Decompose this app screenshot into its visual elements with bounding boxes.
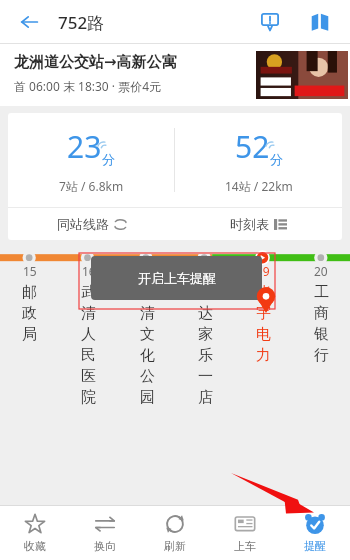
button[interactable]: 换向 [70, 506, 140, 560]
staticText: 23 [67, 126, 102, 167]
staticText: 银 [314, 325, 329, 344]
staticText: 公 [140, 367, 155, 386]
staticText: 局 [22, 325, 37, 344]
staticText: 换向 [94, 539, 116, 553]
staticText: 18 [198, 263, 212, 279]
staticText: 文 [140, 325, 155, 344]
staticText: 店 [198, 388, 213, 407]
staticText: 分 [102, 151, 115, 167]
staticText: 行 [314, 346, 329, 365]
button[interactable]: 19 [234, 263, 292, 367]
button[interactable]: 23 [8, 113, 174, 207]
staticText: 上车 [234, 539, 256, 553]
button[interactable]: 上车 [210, 506, 280, 560]
button[interactable]: Report [254, 6, 286, 38]
staticText: 电 [256, 325, 271, 344]
staticText: 家 [198, 325, 213, 344]
staticText: 19 [256, 263, 270, 279]
button[interactable]: 刷新 [140, 506, 210, 560]
button[interactable]: 17 [118, 263, 176, 409]
staticText: 52 [235, 126, 270, 167]
staticText: 15 [23, 263, 37, 279]
staticText: 宇 [256, 304, 271, 323]
button[interactable]: Map [304, 6, 336, 38]
staticText: 武 [140, 283, 155, 302]
button[interactable]: Back [14, 7, 44, 37]
staticText: 人 [81, 325, 96, 344]
staticText: 收藏 [24, 539, 46, 553]
button[interactable]: 15 [0, 263, 59, 346]
staticText: 化 [140, 346, 155, 365]
staticText: 达 [198, 304, 213, 323]
button[interactable]: 时刻表 [175, 208, 342, 240]
staticText: 工 [314, 283, 329, 302]
staticText: 17 [140, 263, 154, 279]
button[interactable]: Advertisement [256, 51, 348, 99]
staticText: 邮 [22, 283, 37, 302]
staticText: 首 06:00 末 18:30 · 票价4元 [14, 78, 162, 94]
staticText: 医 [81, 367, 96, 386]
staticText: 政 [22, 304, 37, 323]
staticText: 乐 [198, 346, 213, 365]
staticText: 开启上车提醒 [138, 270, 216, 286]
staticText: 一 [198, 367, 213, 386]
button[interactable]: 18 [176, 263, 234, 409]
staticText: 商 [314, 304, 329, 323]
button[interactable]: 52 [175, 113, 342, 207]
button[interactable]: 同站线路 [8, 208, 175, 240]
staticText: 园 [140, 388, 155, 407]
button[interactable]: 收藏 [0, 506, 70, 560]
button[interactable]: 16 [59, 263, 118, 409]
staticText: 同站线路 [57, 216, 109, 232]
staticText: 院 [81, 388, 96, 407]
staticText: 力 [256, 346, 271, 365]
staticText: 16 [82, 263, 96, 279]
button[interactable]: 开启上车提醒 [91, 256, 262, 300]
staticText: 分 [270, 151, 283, 167]
staticText: 华 [256, 283, 271, 302]
button[interactable]: 20 [292, 263, 350, 367]
button[interactable]: 提醒 [280, 506, 350, 560]
staticText: 刷新 [164, 539, 186, 553]
staticText: 龙洲道公交站→高新公寓 [14, 53, 177, 72]
staticText: 清 [81, 304, 96, 323]
staticText: 14站 / 22km [225, 178, 293, 194]
staticText: 清 [140, 304, 155, 323]
staticText: 时刻表 [230, 216, 269, 232]
staticText: 20 [314, 263, 328, 279]
staticText: 海 [198, 283, 213, 302]
staticText: 民 [81, 346, 96, 365]
staticText: 武 [81, 283, 96, 302]
staticText: 7站 / 6.8km [59, 178, 124, 194]
staticText: 提醒 [304, 539, 326, 553]
staticText: 752路 [58, 11, 105, 34]
